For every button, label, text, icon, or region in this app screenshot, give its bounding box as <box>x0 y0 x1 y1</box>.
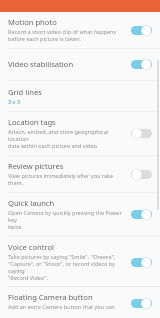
staticText: Take pictures by saying "Smile", "Cheese… <box>8 253 124 281</box>
button[interactable]: Toggle on <box>131 209 152 220</box>
button[interactable]: Toggle off <box>131 169 152 180</box>
button[interactable]: Quick launch <box>0 193 160 236</box>
staticText: Attach, embed, and store geographical lo… <box>8 128 124 149</box>
button[interactable]: Motion photo <box>0 12 160 48</box>
button[interactable]: Toggle on <box>131 25 152 36</box>
button[interactable]: Toggle on <box>131 298 152 309</box>
staticText: 3 x 3 <box>8 98 21 105</box>
staticText: Record a short video clip of what happen… <box>8 28 117 42</box>
button[interactable]: Video stabilisation <box>0 49 160 80</box>
staticText: Motion photo <box>8 17 57 27</box>
staticText: Grid lines <box>8 87 42 97</box>
button[interactable]: Floating Camera button <box>0 287 160 318</box>
staticText: Voice control <box>8 242 55 252</box>
staticText: Video stabilisation <box>8 59 74 69</box>
staticText: Add an extra Camera button that you can … <box>8 303 124 313</box>
staticText: Open Camera by quickly pressing the Powe… <box>8 209 124 230</box>
button[interactable]: Location tags <box>0 112 160 155</box>
staticText: Floating Camera button <box>8 292 93 302</box>
staticText: View pictures immediately after you take… <box>8 172 124 186</box>
button[interactable]: Grid lines <box>0 81 160 111</box>
staticText: Quick launch <box>8 198 55 208</box>
button[interactable]: Toggle off <box>131 128 152 139</box>
staticText: Review pictures <box>8 161 64 171</box>
button[interactable]: Toggle on <box>131 257 152 268</box>
button[interactable]: Toggle on <box>131 59 152 70</box>
button[interactable]: Review pictures <box>0 156 160 192</box>
button[interactable]: Voice control <box>0 237 160 286</box>
staticText: Location tags <box>8 117 56 127</box>
